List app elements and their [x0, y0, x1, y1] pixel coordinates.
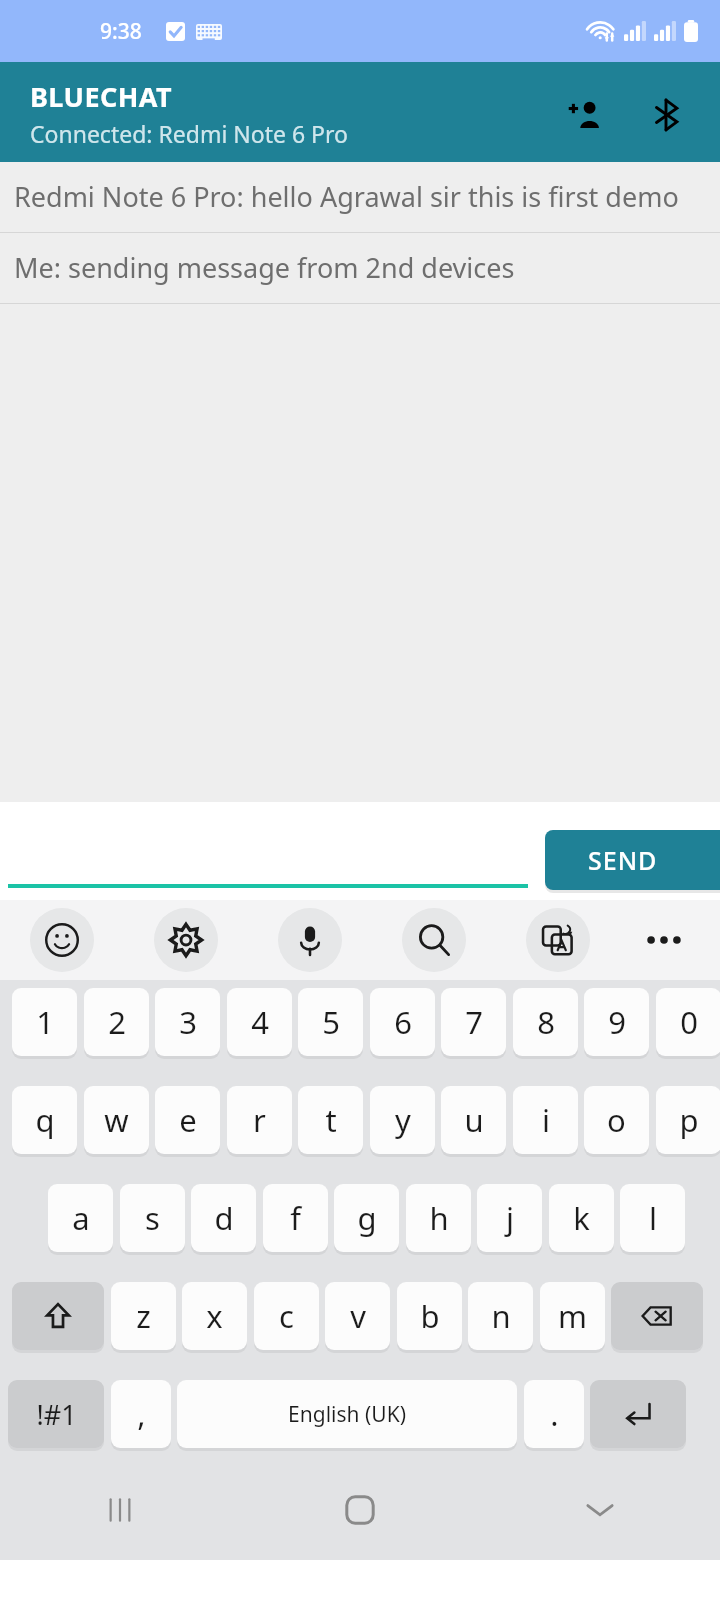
staticText: y [395, 1099, 411, 1141]
staticText: k [573, 1197, 590, 1239]
staticText: Connected: Redmi Note 6 Pro [30, 118, 348, 149]
button[interactable]: a [48, 1184, 113, 1252]
button[interactable]: 2 [84, 988, 149, 1056]
staticText: 5 [322, 1001, 340, 1043]
button[interactable]: Add device [560, 89, 612, 141]
staticText: 9 [608, 1001, 626, 1043]
button[interactable]: v [325, 1282, 390, 1350]
staticText: p [679, 1099, 699, 1141]
button[interactable]: u [441, 1086, 506, 1154]
button[interactable]: 3 [155, 988, 220, 1056]
button[interactable]: 0 [656, 988, 720, 1056]
staticText: a [72, 1197, 90, 1239]
button[interactable]: x [182, 1282, 247, 1350]
button[interactable]: Shift [12, 1282, 104, 1350]
button[interactable]: r [227, 1086, 292, 1154]
staticText: 9:38 [100, 17, 142, 46]
button[interactable]: Voice input [278, 908, 342, 972]
button[interactable]: e [155, 1086, 220, 1154]
button[interactable]: y [370, 1086, 435, 1154]
staticText: q [35, 1099, 55, 1141]
button[interactable]: p [656, 1086, 720, 1154]
button[interactable]: 8 [513, 988, 578, 1056]
staticText: BLUECHAT [30, 78, 172, 115]
button[interactable]: Hide keyboard [480, 1460, 720, 1560]
button[interactable]: i [513, 1086, 578, 1154]
staticText: i [542, 1099, 550, 1141]
button[interactable]: Bluetooth [640, 89, 692, 141]
button[interactable]: Search [402, 908, 466, 972]
button[interactable]: Me: sending message from 2nd devices [0, 233, 720, 303]
button[interactable]: 4 [227, 988, 292, 1056]
button[interactable]: q [12, 1086, 77, 1154]
button[interactable]: 6 [370, 988, 435, 1056]
button[interactable]: Home [240, 1460, 480, 1560]
staticText: 7 [465, 1001, 483, 1043]
button[interactable]: Recents [0, 1460, 240, 1560]
staticText: t [325, 1099, 337, 1141]
button[interactable]: Emoji [30, 908, 94, 972]
button[interactable]: . [524, 1380, 584, 1448]
button[interactable]: d [191, 1184, 256, 1252]
button[interactable]: s [120, 1184, 185, 1252]
button[interactable]: 9 [584, 988, 649, 1056]
staticText: c [279, 1295, 294, 1337]
button[interactable]: Backspace [611, 1282, 703, 1350]
staticText: r [253, 1099, 266, 1141]
staticText: g [357, 1197, 377, 1239]
staticText: SEND [588, 843, 658, 877]
button[interactable]: j [477, 1184, 542, 1252]
staticText: 6 [394, 1001, 412, 1043]
button[interactable]: f [263, 1184, 328, 1252]
staticText: b [420, 1295, 440, 1337]
button[interactable]: o [584, 1086, 649, 1154]
staticText: 1 [36, 1001, 54, 1043]
staticText: 2 [108, 1001, 126, 1043]
button[interactable]: z [111, 1282, 176, 1350]
staticText: s [145, 1197, 160, 1239]
staticText: j [506, 1197, 514, 1239]
staticText: . [550, 1393, 559, 1435]
staticText: u [464, 1099, 484, 1141]
button[interactable]: t [298, 1086, 363, 1154]
staticText: n [491, 1295, 511, 1337]
button[interactable]: k [549, 1184, 614, 1252]
staticText: Redmi Note 6 Pro: hello Agrawal sir this… [14, 178, 679, 215]
button[interactable]: w [84, 1086, 149, 1154]
button[interactable]: 5 [298, 988, 363, 1056]
button[interactable]: SEND [545, 830, 720, 890]
button[interactable]: c [254, 1282, 319, 1350]
staticText: h [429, 1197, 449, 1239]
button[interactable]: Keyboard settings [154, 908, 218, 972]
button[interactable]: g [334, 1184, 399, 1252]
staticText: 4 [251, 1001, 269, 1043]
button[interactable]: More options [632, 908, 696, 972]
button[interactable]: 1 [12, 988, 77, 1056]
button[interactable]: n [468, 1282, 533, 1350]
button[interactable]: m [540, 1282, 605, 1350]
button[interactable]: Enter [590, 1380, 686, 1448]
button[interactable]: !#1 [8, 1380, 104, 1448]
button[interactable]: , [111, 1380, 171, 1448]
staticText: f [290, 1197, 301, 1239]
staticText: e [179, 1099, 197, 1141]
button[interactable]: h [406, 1184, 471, 1252]
staticText: o [607, 1099, 626, 1141]
button[interactable]: English (UK) [177, 1380, 517, 1448]
staticText: 0 [680, 1001, 698, 1043]
button[interactable]: Redmi Note 6 Pro: hello Agrawal sir this… [0, 162, 720, 232]
staticText: x [206, 1295, 223, 1337]
button[interactable]: b [397, 1282, 462, 1350]
staticText: d [214, 1197, 234, 1239]
button[interactable]: 7 [441, 988, 506, 1056]
button[interactable]: l [620, 1184, 685, 1252]
staticText: w [104, 1099, 129, 1141]
staticText: English (UK) [288, 1400, 406, 1429]
staticText: l [649, 1197, 657, 1239]
staticText: 8 [537, 1001, 555, 1043]
staticText: , [137, 1393, 146, 1435]
button[interactable]: Translate [526, 908, 590, 972]
staticText: !#1 [36, 1396, 77, 1433]
staticText: Me: sending message from 2nd devices [14, 249, 515, 286]
